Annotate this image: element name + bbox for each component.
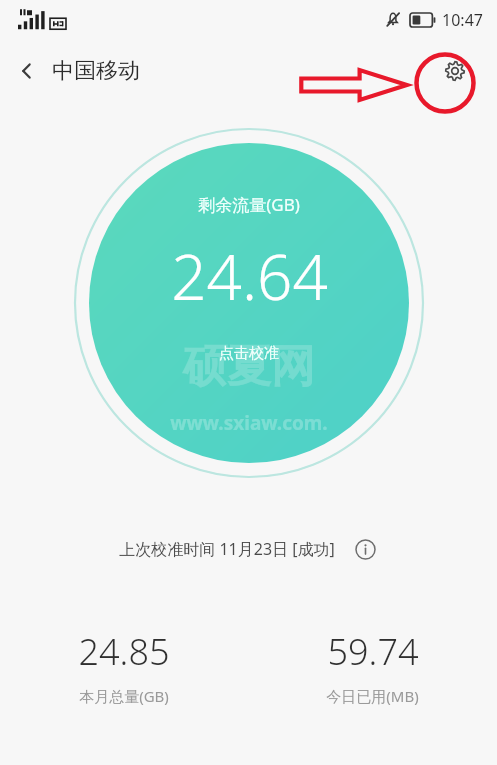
staticText: 点击校准: [219, 344, 279, 363]
staticText: 本月总量(GB): [79, 686, 169, 706]
staticText: 剩余流量(GB): [198, 193, 300, 216]
staticText: 中国移动: [52, 57, 140, 85]
staticText: 10:47: [442, 9, 483, 31]
staticText: 硕夏网: [183, 339, 315, 394]
button[interactable]: Settings: [435, 51, 475, 91]
button[interactable]: Back: [0, 51, 152, 91]
staticText: www.sxiaw.com.: [170, 410, 328, 436]
button[interactable]: Info: [351, 535, 379, 563]
staticText: 今日已用(MB): [326, 686, 419, 706]
staticText: 24.85: [78, 627, 170, 676]
button[interactable]: 59.74: [248, 623, 497, 710]
button[interactable]: 剩余流量(GB): [89, 143, 409, 463]
other: Back: [16, 60, 38, 82]
staticText: 59.74: [327, 627, 419, 676]
staticText: 24.64: [171, 234, 328, 318]
staticText: 上次校准时间 11月23日 [成功]: [119, 538, 335, 560]
button[interactable]: 24.85: [0, 623, 248, 710]
